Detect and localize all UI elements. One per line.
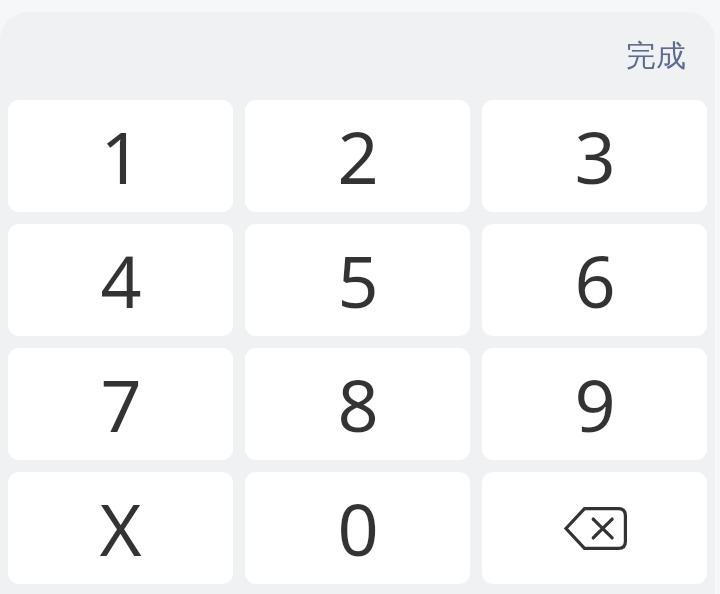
staticText: 5 bbox=[337, 231, 379, 329]
staticText: 完成 bbox=[626, 37, 686, 75]
button[interactable]: 1 bbox=[8, 100, 233, 212]
button[interactable]: X bbox=[8, 472, 233, 584]
staticText: 3 bbox=[574, 107, 616, 205]
staticText: 0 bbox=[337, 479, 379, 577]
staticText: 8 bbox=[337, 355, 379, 453]
button[interactable]: 完成 bbox=[612, 12, 700, 100]
staticText: 1 bbox=[100, 107, 142, 205]
staticText: 4 bbox=[100, 231, 142, 329]
button[interactable]: 4 bbox=[8, 224, 233, 336]
button[interactable]: 7 bbox=[8, 348, 233, 460]
staticText: X bbox=[99, 479, 142, 577]
button[interactable]: 2 bbox=[245, 100, 470, 212]
staticText: 2 bbox=[337, 107, 379, 205]
button[interactable]: 6 bbox=[482, 224, 707, 336]
staticText: 9 bbox=[574, 355, 616, 453]
staticText: 6 bbox=[574, 231, 616, 329]
button[interactable]: Backspace bbox=[482, 472, 707, 584]
button[interactable]: 8 bbox=[245, 348, 470, 460]
button[interactable]: 3 bbox=[482, 100, 707, 212]
staticText: 7 bbox=[100, 355, 142, 453]
button[interactable]: 0 bbox=[245, 472, 470, 584]
button[interactable]: 9 bbox=[482, 348, 707, 460]
button[interactable]: 5 bbox=[245, 224, 470, 336]
